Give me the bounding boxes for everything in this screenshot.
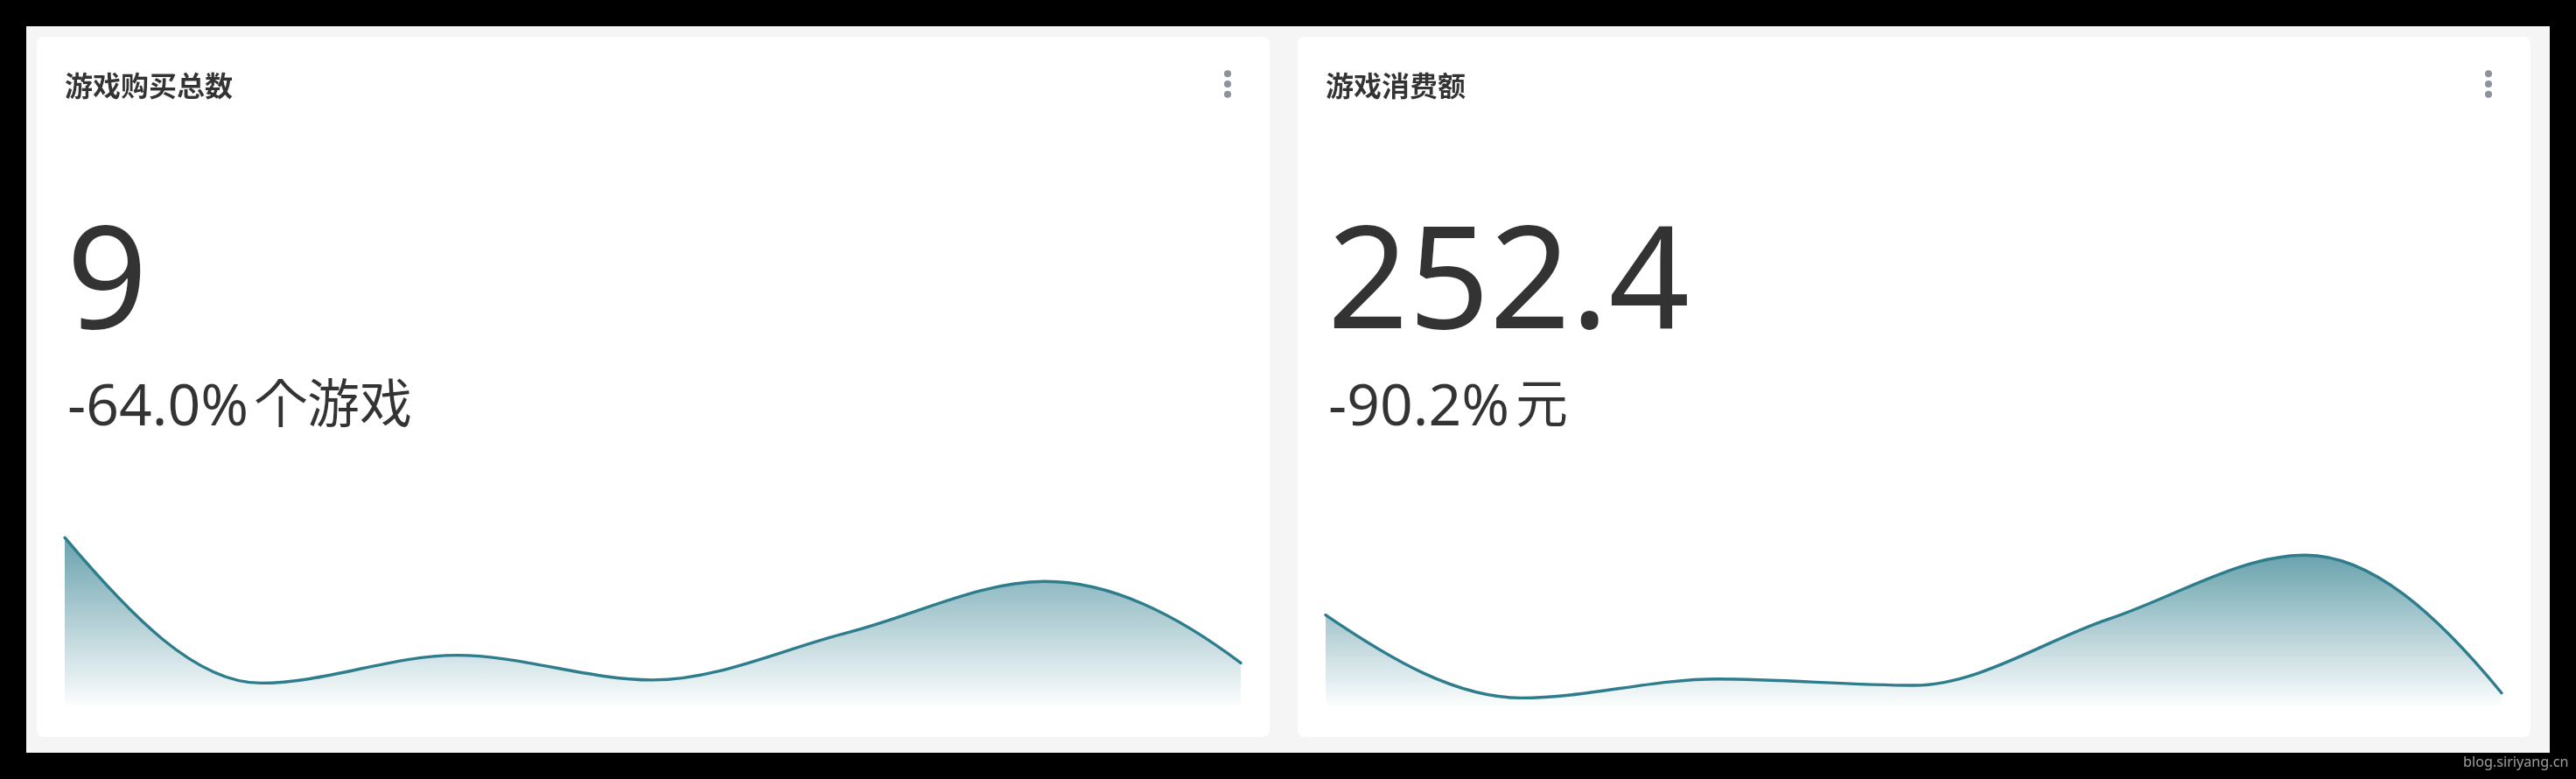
staticText: 游戏购买总数 — [65, 64, 234, 104]
staticText: 252.4 — [1327, 177, 1690, 370]
button[interactable]: More options — [2469, 65, 2508, 103]
staticText: blog.siriyang.cn — [2463, 752, 2569, 771]
staticText: 个游戏 — [255, 361, 412, 438]
button[interactable]: More options — [1208, 65, 1247, 103]
staticText: 9 — [66, 177, 148, 370]
staticText: 元 — [1515, 361, 1568, 438]
staticText: -64.0% — [67, 363, 249, 442]
staticText: 游戏消费额 — [1326, 64, 1466, 104]
staticText: -90.2% — [1328, 363, 1510, 442]
